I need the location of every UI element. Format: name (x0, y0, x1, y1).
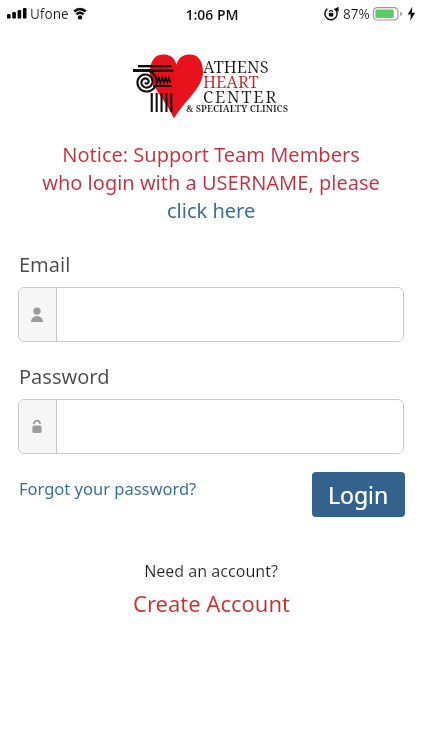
button[interactable]: Forgot your password? (19, 477, 197, 499)
staticText: 87% (343, 5, 370, 23)
staticText: & SPECIALTY CLINICS (186, 102, 289, 115)
staticText: click here (167, 197, 256, 224)
staticText: CENTER (203, 85, 279, 107)
staticText: ATHENS (203, 55, 269, 77)
staticText: HEART (203, 70, 259, 92)
button[interactable]: Login (312, 472, 405, 517)
button[interactable]: Create Account (133, 588, 290, 618)
staticText: 1:06 PM (1, 5, 422, 24)
staticText: Forgot your password? (19, 477, 197, 499)
staticText: Email (19, 251, 71, 278)
button[interactable]: click here (167, 197, 256, 224)
staticText: Login (328, 479, 389, 510)
staticText: Notice: Support Team Members (0, 141, 422, 168)
staticText: Need an account? (0, 560, 422, 582)
staticText: Password (19, 363, 110, 390)
staticText: Create Account (133, 588, 290, 618)
staticText: Ufone (30, 5, 69, 23)
staticText: who login with a USERNAME, please (0, 169, 422, 196)
